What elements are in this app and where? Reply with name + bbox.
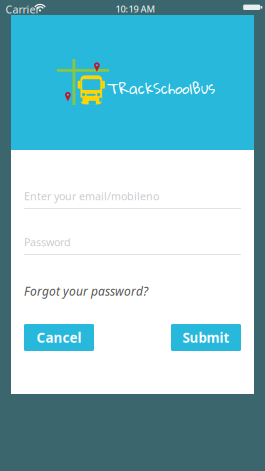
- button[interactable]: Submit: [171, 324, 241, 351]
- staticText: Carrier: [5, 2, 39, 16]
- button[interactable]: Enter your email/mobileno: [24, 192, 241, 212]
- staticText: TRackSchoolBus: [107, 73, 215, 103]
- staticText: 10:19 AM: [115, 3, 155, 15]
- button[interactable]: Cancel: [24, 324, 94, 351]
- staticText: Forgot your password?: [24, 283, 148, 299]
- button[interactable]: Password: [24, 238, 241, 258]
- staticText: Cancel: [36, 329, 81, 346]
- button[interactable]: Forgot your password?: [24, 284, 174, 298]
- staticText: Submit: [182, 329, 229, 346]
- staticText: Enter your email/mobileno: [24, 189, 159, 203]
- staticText: Password: [24, 235, 71, 249]
